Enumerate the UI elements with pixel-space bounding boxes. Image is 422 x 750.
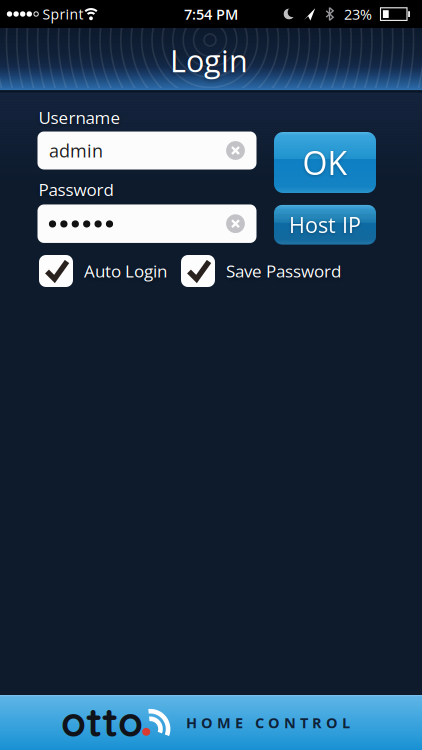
staticText: Username — [38, 106, 120, 129]
staticText: Password — [38, 178, 113, 201]
button[interactable]: Auto Login — [39, 255, 167, 287]
staticText: 7:54 PM — [184, 4, 238, 24]
button[interactable]: OK — [274, 132, 376, 193]
staticText: 23% — [344, 4, 372, 24]
staticText: admin — [49, 138, 103, 163]
staticText: Auto Login — [84, 259, 167, 283]
button[interactable]: Host IP — [274, 205, 376, 244]
staticText: otto — [61, 696, 143, 746]
button[interactable] — [225, 140, 246, 161]
staticText: Login — [170, 40, 248, 81]
button[interactable] — [225, 213, 246, 234]
button[interactable]: Save Password — [181, 255, 341, 287]
button[interactable] — [37, 204, 256, 243]
staticText: Host IP — [289, 210, 361, 239]
staticText: Sprint — [42, 4, 83, 24]
staticText: OK — [302, 141, 347, 184]
staticText: Save Password — [226, 259, 341, 283]
staticText: H O M E C O N T R O L — [186, 713, 350, 732]
button[interactable]: admin — [37, 131, 256, 169]
